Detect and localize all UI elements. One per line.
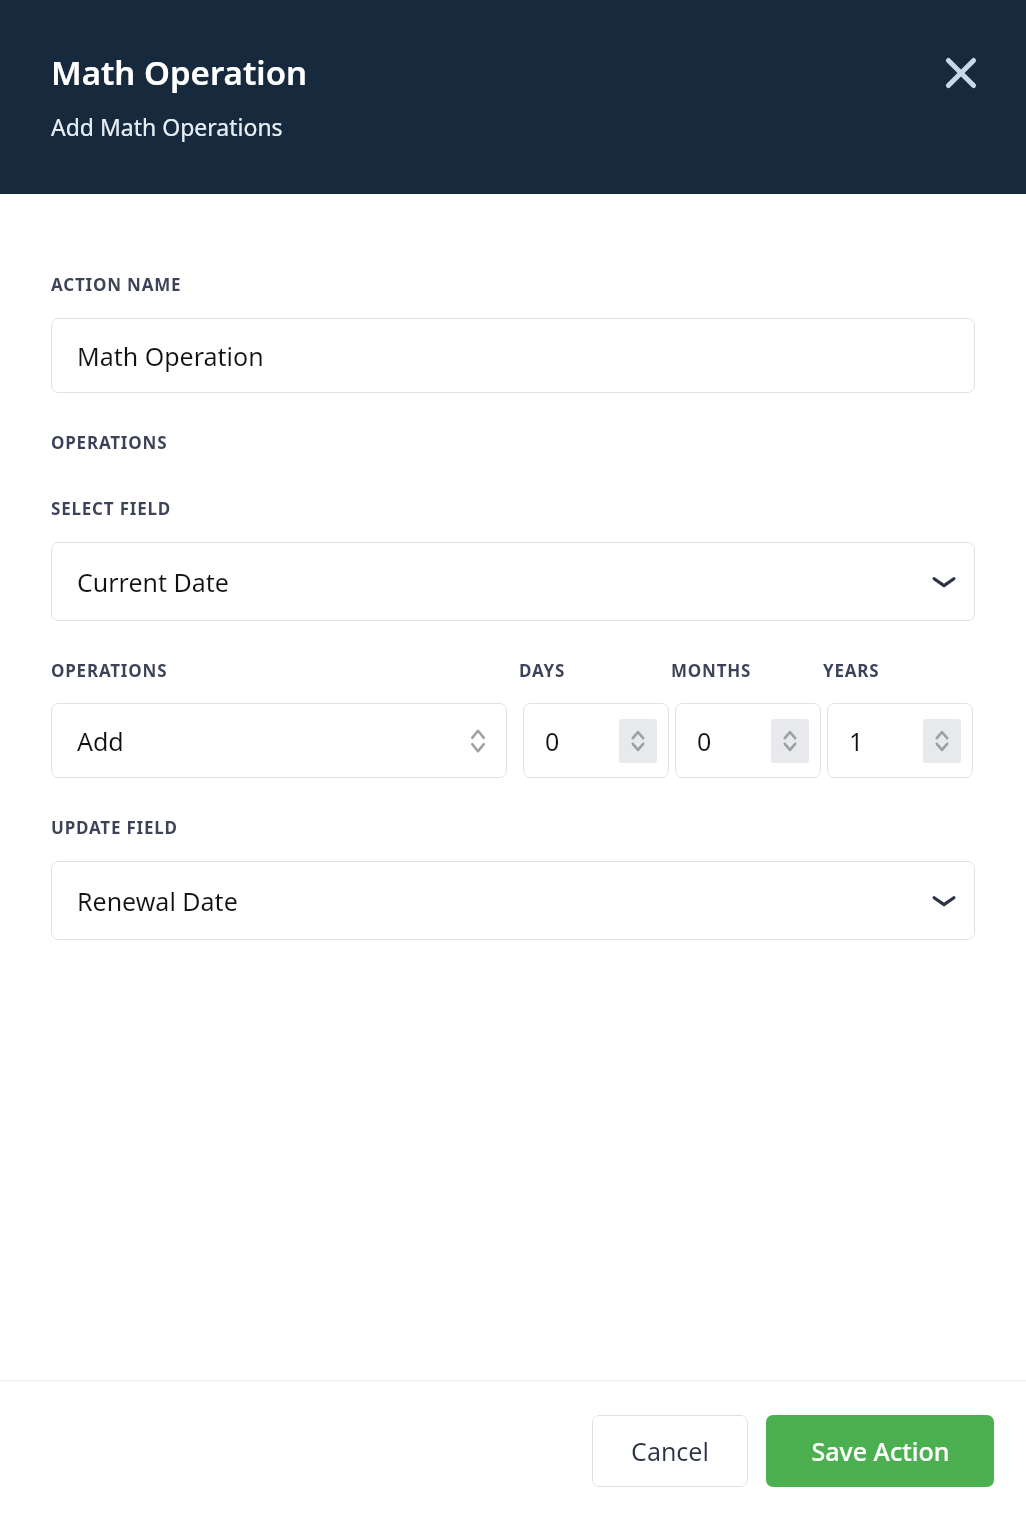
staticText: Add [77, 724, 124, 758]
staticText: DAYS [519, 659, 671, 682]
button[interactable]: Increment or decrement [771, 719, 809, 763]
staticText: UPDATE FIELD [51, 816, 178, 839]
other: Change operation [467, 725, 489, 757]
button[interactable]: 1 [827, 703, 973, 778]
staticText: 0 [545, 724, 560, 758]
button[interactable]: 0 [523, 703, 669, 778]
button[interactable]: Cancel [592, 1415, 748, 1487]
staticText: Cancel [631, 1434, 709, 1468]
other: Expand update field [931, 892, 957, 910]
staticText: Save Action [811, 1434, 950, 1468]
staticText: OPERATIONS [51, 431, 168, 454]
staticText: Math Operation [77, 339, 264, 373]
staticText: Add Math Operations [51, 111, 283, 142]
staticText: OPERATIONS [51, 659, 519, 682]
button[interactable]: Increment or decrement [923, 719, 961, 763]
staticText: 1 [849, 724, 864, 758]
button[interactable]: Close [931, 43, 991, 103]
staticText: Renewal Date [77, 884, 238, 918]
other: Expand select field [931, 573, 957, 591]
button[interactable]: Save Action [766, 1415, 994, 1487]
staticText: SELECT FIELD [51, 497, 172, 520]
button[interactable]: Increment or decrement [619, 719, 657, 763]
staticText: Math Operation [51, 50, 308, 95]
staticText: ACTION NAME [51, 273, 182, 296]
staticText: YEARS [823, 659, 880, 682]
button[interactable]: 0 [675, 703, 821, 778]
button[interactable]: Add [51, 703, 507, 778]
staticText: 0 [697, 724, 712, 758]
button[interactable]: Renewal Date [51, 861, 975, 940]
button[interactable]: Math Operation [51, 318, 975, 393]
button[interactable]: Current Date [51, 542, 975, 621]
staticText: MONTHS [671, 659, 823, 682]
staticText: Current Date [77, 565, 229, 599]
